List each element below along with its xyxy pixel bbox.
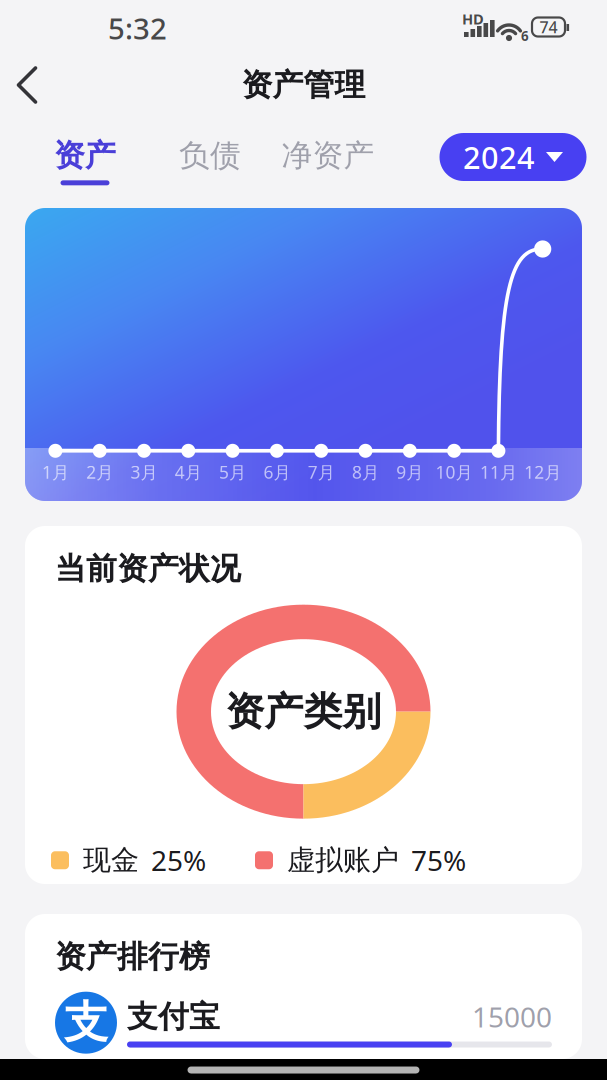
staticText: 资产 — [54, 137, 116, 174]
staticText: 净资产 — [281, 137, 374, 174]
staticText: 3月 — [130, 460, 157, 483]
staticText: 支 — [64, 996, 108, 1050]
staticText: 5:32 — [108, 8, 167, 47]
staticText: 当前资产状况 — [55, 550, 241, 588]
staticText: 75% — [411, 842, 466, 879]
staticText: 负债 — [179, 137, 241, 174]
staticText: 7月 — [308, 460, 335, 483]
staticText: 74 — [539, 16, 557, 38]
staticText: 资产排行榜 — [55, 938, 210, 976]
staticText: 6 — [521, 27, 529, 45]
staticText: 12月 — [524, 460, 561, 483]
staticText: 支付宝 — [127, 998, 220, 1035]
staticText: 6月 — [263, 460, 290, 483]
staticText: 11月 — [480, 460, 517, 483]
staticText: 5月 — [219, 460, 246, 483]
button[interactable]: 净资产 — [273, 130, 383, 192]
staticText: 2月 — [86, 460, 113, 483]
staticText: 10月 — [436, 460, 473, 483]
staticText: 虚拟账户 — [287, 843, 399, 877]
staticText: 2024 — [463, 137, 535, 177]
staticText: 现金 — [83, 843, 139, 877]
button[interactable]: 支 — [55, 992, 552, 1054]
staticText: 4月 — [175, 460, 202, 483]
button[interactable]: 2024 — [439, 133, 586, 181]
button[interactable]: 负债 — [155, 130, 265, 192]
button[interactable]: 资产 — [30, 130, 140, 192]
staticText: 1月 — [42, 460, 69, 483]
staticText: 资产管理 — [241, 66, 365, 104]
staticText: 资产类别 — [225, 688, 381, 735]
staticText: 9月 — [396, 460, 423, 483]
staticText: 8月 — [352, 460, 379, 483]
staticText: 15000 — [472, 998, 552, 1035]
staticText: 25% — [151, 842, 206, 879]
button[interactable]: Back — [5, 58, 59, 112]
staticText: HD — [462, 9, 484, 28]
